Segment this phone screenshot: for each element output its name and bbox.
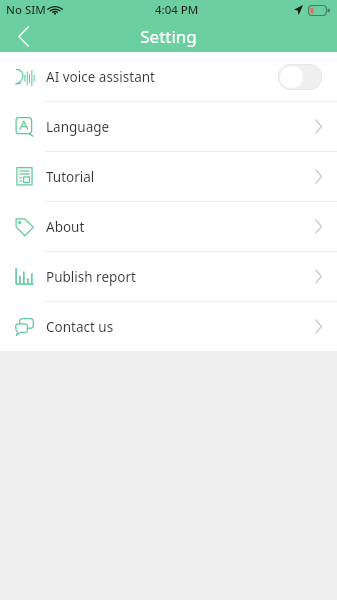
button[interactable]: Tutorial: [0, 152, 337, 201]
button[interactable]: About: [0, 202, 337, 251]
button[interactable]: Language: [0, 102, 337, 151]
button[interactable]: Publish report: [0, 252, 337, 301]
staticText: Contact us: [46, 318, 114, 336]
staticText: Tutorial: [46, 168, 95, 186]
staticText: Publish report: [46, 268, 136, 286]
button[interactable]: AI voice assistant toggle: [278, 64, 322, 90]
button[interactable]: Contact us: [0, 302, 337, 351]
staticText: About: [46, 218, 85, 236]
staticText: 4:04 PM: [155, 2, 199, 18]
staticText: AI voice assistant: [46, 68, 155, 86]
button[interactable]: Back: [0, 20, 46, 52]
staticText: No SIM: [6, 2, 46, 18]
staticText: Language: [46, 118, 110, 136]
staticText: Setting: [140, 25, 197, 48]
button[interactable]: AI voice assistant: [0, 52, 337, 101]
